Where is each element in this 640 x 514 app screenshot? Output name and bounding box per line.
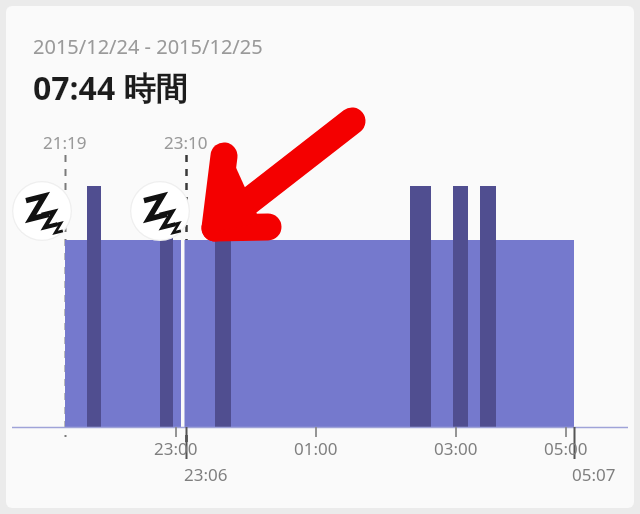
button[interactable]: Sleep chart 2015/12/24 - 2015/12/25, 07:… xyxy=(6,6,634,508)
